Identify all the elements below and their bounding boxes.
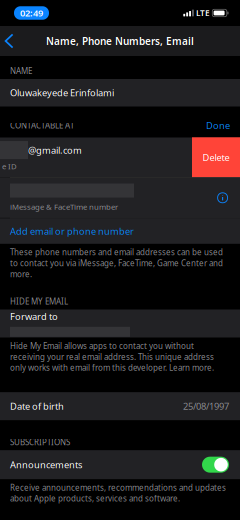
staticText: Oluwakeyede Erinfolami [10, 86, 114, 99]
staticText: CONTACTABLE AT [10, 120, 74, 131]
button[interactable]: Done [202, 116, 234, 135]
button[interactable]: Forward to [0, 309, 240, 337]
staticText: iMessage & FaceTime number [10, 201, 118, 212]
button[interactable]: Oluwakeyede Erinfolami [0, 79, 240, 106]
staticText: Add email or phone number [10, 225, 134, 237]
staticText: Name, Phone Numbers, Email [46, 34, 194, 48]
staticText: 02:49 [20, 7, 43, 19]
button[interactable]: Announcements [202, 457, 229, 473]
button[interactable]: Back [0, 27, 24, 55]
button[interactable]: Date of birth [0, 392, 240, 420]
staticText: Delete [202, 151, 229, 164]
staticText: LTE [196, 7, 210, 19]
staticText: HIDE MY EMAIL [10, 296, 68, 307]
staticText: NAME [10, 66, 32, 76]
staticText: 25/08/1997 [183, 400, 229, 412]
staticText: SUBSCRIPTIONS [10, 437, 70, 448]
button[interactable]: Delete [192, 137, 240, 177]
staticText: Hide My Email allows apps to contact you… [10, 340, 214, 373]
staticText: Receive announcements, recommendations a… [10, 482, 226, 504]
button[interactable]: Add email or phone number [0, 218, 240, 244]
button[interactable]: More info [214, 189, 231, 206]
staticText: Forward to [10, 310, 58, 323]
staticText: Done [206, 119, 230, 132]
staticText: Announcements [10, 458, 82, 471]
staticText: @gmail.com [28, 144, 82, 156]
staticText: e ID [2, 161, 17, 171]
staticText: Date of birth [10, 400, 64, 412]
staticText: These phone numbers and email addresses … [10, 247, 223, 279]
